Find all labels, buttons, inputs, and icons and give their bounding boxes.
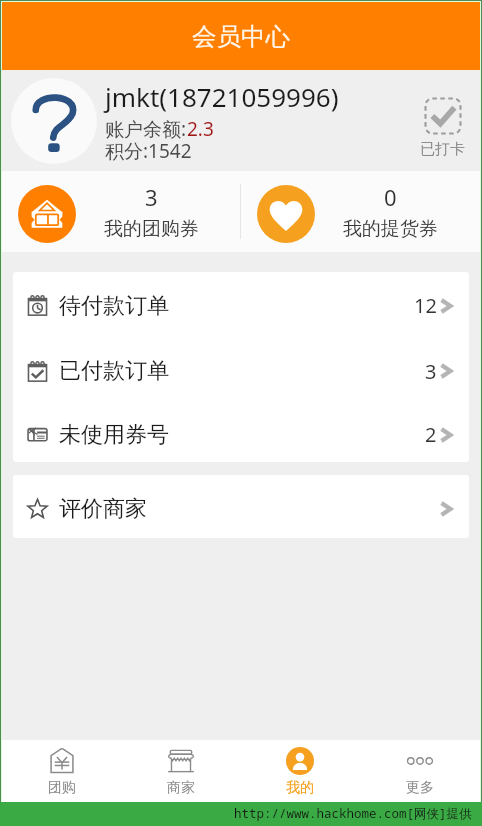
staticText: 未使用券号 bbox=[59, 421, 169, 449]
staticText: 团购 bbox=[48, 779, 76, 797]
staticText: 我的团购券 bbox=[104, 217, 199, 241]
staticText: 待付款订单 bbox=[59, 292, 169, 320]
button[interactable]: 未使用券号 bbox=[13, 399, 469, 462]
button[interactable]: 0 bbox=[241, 171, 480, 252]
staticText: 2.3 bbox=[187, 116, 214, 142]
staticText: 商家 bbox=[167, 779, 195, 797]
staticText: jmkt(18721059996) bbox=[105, 79, 339, 114]
staticText: 12 bbox=[414, 292, 437, 319]
staticText: 0 bbox=[384, 182, 397, 212]
staticText: 会员中心 bbox=[192, 21, 290, 52]
button[interactable]: 商家 bbox=[121, 740, 240, 802]
staticText: 账户余额: bbox=[105, 116, 187, 142]
staticText: 我的提货券 bbox=[343, 217, 438, 241]
button[interactable]: 我的 bbox=[240, 740, 360, 802]
staticText: 3 bbox=[425, 358, 437, 385]
button[interactable]: 已付款订单 bbox=[13, 335, 469, 399]
button[interactable]: 评价商家 bbox=[13, 475, 469, 538]
staticText: 已付款订单 bbox=[59, 357, 169, 385]
staticText: 积分:1542 bbox=[105, 138, 192, 164]
button[interactable]: 更多 bbox=[360, 740, 480, 802]
staticText: 评价商家 bbox=[59, 495, 147, 523]
button[interactable]: 已打卡 签到 bbox=[417, 94, 468, 162]
button[interactable]: 待付款订单 bbox=[13, 272, 469, 335]
staticText: 2 bbox=[425, 421, 437, 448]
staticText: 更多 bbox=[406, 779, 434, 797]
staticText: 3 bbox=[145, 182, 158, 212]
button[interactable]: 团购 bbox=[2, 740, 121, 802]
staticText: 我的 bbox=[286, 779, 314, 797]
button[interactable]: 3 bbox=[2, 171, 240, 252]
staticText: http://www.hackhome.com[网侠]提供 bbox=[234, 805, 472, 822]
staticText: 已打卡 bbox=[420, 140, 465, 159]
